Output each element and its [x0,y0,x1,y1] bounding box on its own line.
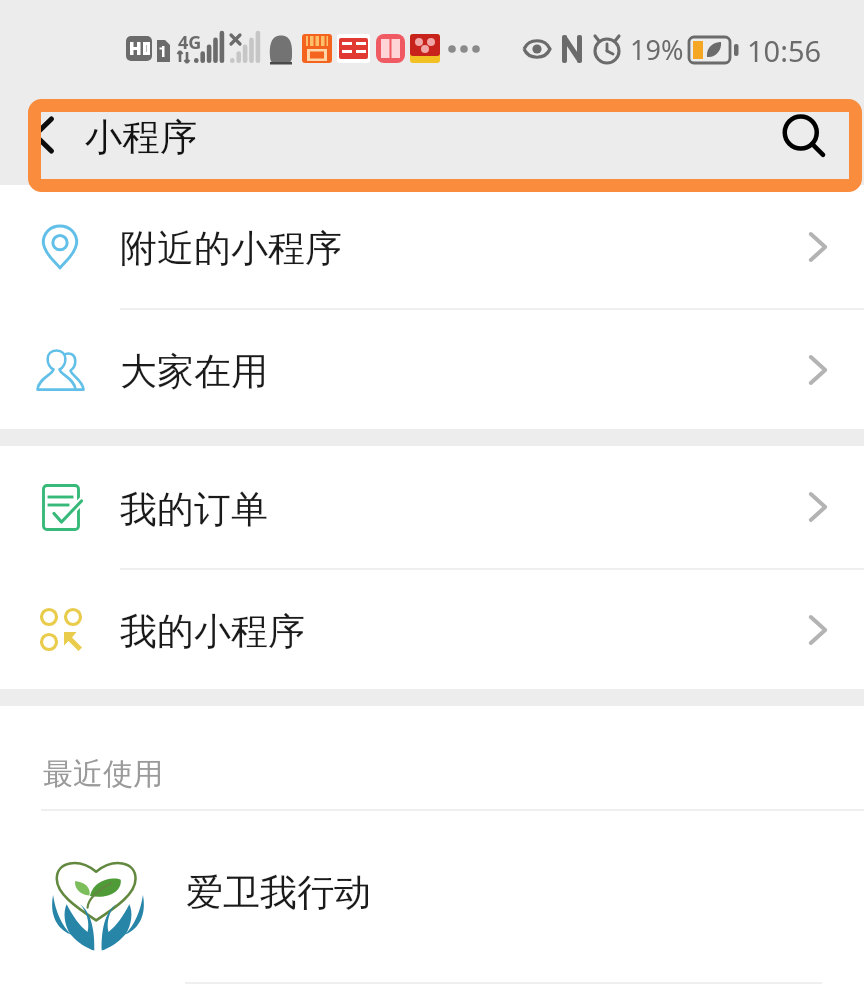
staticText: 大家在用 [120,348,268,395]
button[interactable]: 我的小程序 [0,570,864,689]
button[interactable]: 我的订单 [0,446,864,568]
staticText: 小程序 [85,114,198,161]
button[interactable]: 附近的小程序 [0,185,864,308]
button[interactable]: 大家在用 [0,310,864,429]
staticText: 4G [178,30,202,55]
staticText: 最近使用 [43,755,163,793]
button[interactable]: Back [0,93,88,185]
staticText: 10:56 [747,31,822,70]
staticText: 我的小程序 [120,608,305,655]
staticText: 爱卫我行动 [186,869,371,916]
staticText: 附近的小程序 [120,225,342,272]
staticText: 19% [630,31,684,68]
button[interactable]: 爱卫我行动 [0,811,864,982]
staticText: 我的订单 [120,486,268,533]
button[interactable]: Search [744,93,864,185]
